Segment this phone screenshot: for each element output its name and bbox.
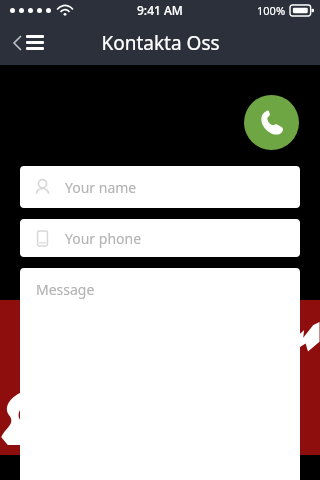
staticText: Your phone — [65, 229, 142, 248]
button[interactable]: Menu — [10, 31, 48, 54]
button[interactable]: Your name input — [20, 166, 300, 208]
staticText: Your name — [65, 178, 137, 197]
button[interactable]: Message — [20, 268, 300, 480]
button[interactable]: Your phone input — [20, 219, 300, 257]
staticText: 9:41 AM — [137, 2, 183, 18]
button[interactable]: Call — [244, 95, 299, 150]
staticText: Message — [36, 280, 95, 299]
staticText: Kontakta Oss — [101, 30, 220, 56]
staticText: 100% — [257, 3, 286, 18]
